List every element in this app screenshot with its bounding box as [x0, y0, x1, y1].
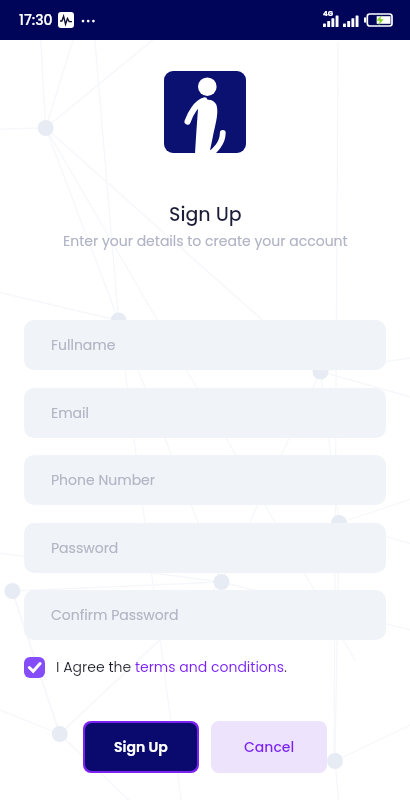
button[interactable]: App logo: [164, 71, 246, 153]
button[interactable]: Email: [24, 388, 386, 438]
staticText: Email: [51, 403, 89, 423]
button[interactable]: I Agree the terms and conditions.: [56, 657, 287, 677]
button[interactable]: Sign Up: [85, 723, 197, 771]
button[interactable]: Fullname: [24, 320, 386, 370]
staticText: 4G: [323, 9, 334, 19]
staticText: Confirm Password: [51, 605, 179, 625]
staticText: Phone Number: [51, 470, 155, 490]
button[interactable]: Password: [24, 523, 386, 573]
staticText: Sign Up: [169, 201, 242, 228]
button[interactable]: I agree checkbox: [24, 657, 45, 678]
staticText: Password: [51, 538, 119, 558]
staticText: Enter your details to create your accoun…: [63, 231, 348, 251]
staticText: 17:30: [19, 10, 53, 30]
button[interactable]: Phone Number: [24, 455, 386, 505]
button[interactable]: Confirm Password: [24, 590, 386, 640]
button[interactable]: Cancel: [211, 721, 327, 773]
staticText: Sign Up: [114, 737, 168, 757]
staticText: Cancel: [244, 737, 295, 757]
staticText: Fullname: [51, 335, 116, 355]
